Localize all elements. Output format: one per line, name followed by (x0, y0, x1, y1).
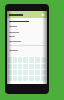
button[interactable]: Key (29, 76, 34, 81)
button[interactable]: Key (13, 76, 17, 81)
button[interactable]: Key (35, 57, 40, 63)
button[interactable]: Key (23, 70, 28, 75)
button[interactable]: Key (18, 57, 22, 63)
button[interactable]: Key (8, 57, 12, 63)
button[interactable]: Key (23, 64, 28, 69)
button[interactable]: Key (29, 57, 34, 63)
button[interactable]: Key (29, 70, 34, 75)
button[interactable]: Key (13, 70, 17, 75)
button[interactable]: Key (35, 70, 40, 75)
button[interactable]: Account (7, 11, 47, 18)
button[interactable]: Key (23, 76, 28, 81)
button[interactable]: Key (23, 57, 28, 63)
button[interactable]: Key (8, 70, 12, 75)
button[interactable]: Key (41, 70, 46, 75)
button[interactable]: Key (41, 57, 46, 63)
button[interactable]: Key (18, 70, 22, 75)
button[interactable]: Key (13, 64, 17, 69)
button[interactable]: Key (13, 57, 17, 63)
button[interactable]: Key (29, 64, 34, 69)
button[interactable]: Key (35, 64, 40, 69)
button[interactable]: Key (41, 64, 46, 69)
button[interactable]: Key (41, 76, 46, 81)
button[interactable]: Key (18, 76, 22, 81)
button[interactable]: Account (41, 13, 45, 17)
button[interactable]: Key (35, 76, 40, 81)
button[interactable]: Key (18, 64, 22, 69)
button[interactable]: Key (8, 64, 12, 69)
button[interactable]: Key (8, 76, 12, 81)
